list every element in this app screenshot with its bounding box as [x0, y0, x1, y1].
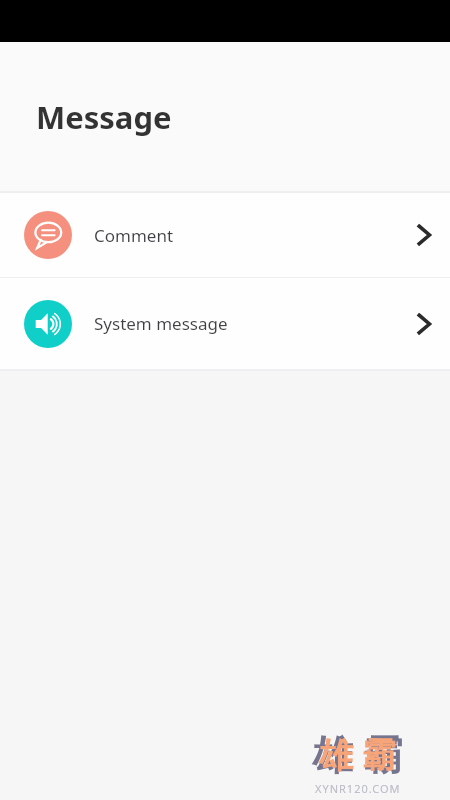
staticText: System message — [94, 312, 228, 335]
other: System message icon — [24, 300, 72, 348]
other: Comment icon — [24, 211, 72, 259]
button[interactable]: Comment icon — [0, 193, 450, 277]
staticText: XYNR120.COM — [315, 781, 401, 796]
staticText: Message — [36, 96, 172, 138]
staticText: 雄 霸 — [319, 731, 396, 777]
staticText: 雄 霸 — [312, 726, 403, 781]
button[interactable]: System message icon — [0, 278, 450, 369]
staticText: Comment — [94, 224, 174, 247]
